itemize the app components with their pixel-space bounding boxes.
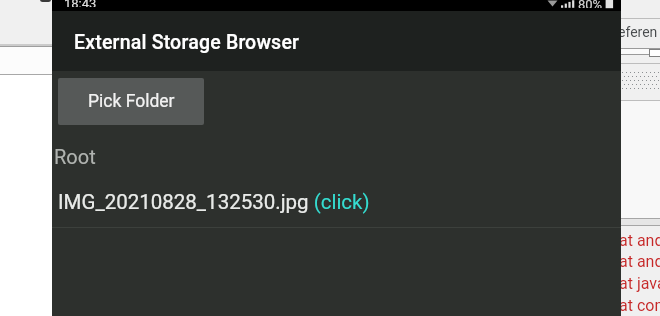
staticText: Root	[54, 145, 96, 168]
staticText: 18:43	[64, 0, 97, 7]
staticText: External Storage Browser	[74, 31, 300, 54]
button[interactable]: Pick Folder	[58, 78, 204, 125]
staticText: Pick Folder	[88, 91, 175, 112]
staticText: 80%	[578, 0, 603, 8]
staticText: at and at and at java at com	[619, 231, 660, 315]
staticText: eferen	[618, 24, 658, 40]
button[interactable]: IMG_20210828_132530.jpg (click)	[58, 190, 370, 214]
